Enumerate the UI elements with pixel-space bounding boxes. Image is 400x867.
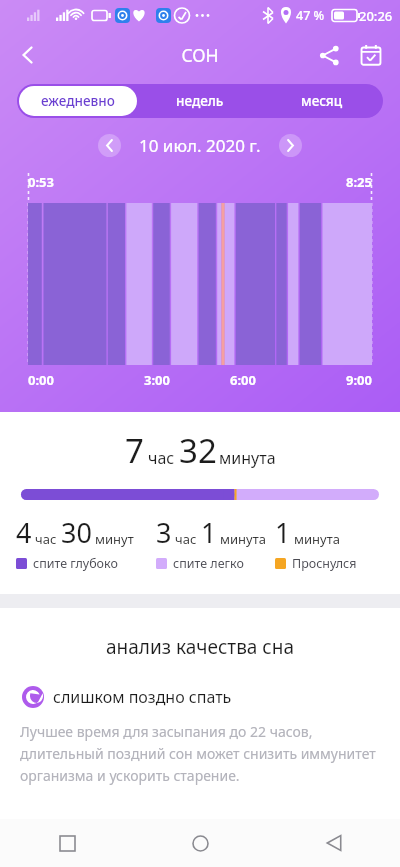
staticText: 0:00 — [28, 371, 54, 389]
staticText: СОН — [181, 43, 219, 67]
staticText: 4 — [16, 514, 32, 551]
staticText: 47 % — [296, 7, 325, 24]
staticText: 8:25 — [346, 173, 372, 191]
staticText: 10 июл. 2020 г. — [139, 134, 261, 157]
staticText: ежедневно — [41, 92, 115, 110]
staticText: слишком поздно спать — [53, 686, 232, 708]
staticText: 1 — [275, 514, 291, 551]
staticText: 3:00 — [144, 371, 170, 389]
staticText: 32 — [179, 428, 217, 473]
staticText: 0:53 — [28, 173, 54, 191]
staticText: месяц — [301, 92, 343, 110]
button[interactable]: Календарь — [350, 34, 392, 76]
staticText: анализ качества сна — [0, 634, 400, 660]
staticText: спите глубоко — [33, 555, 118, 572]
staticText: 30 — [61, 514, 92, 551]
staticText: спите легко — [173, 555, 244, 572]
staticText: минута — [294, 530, 340, 548]
staticText: час — [175, 530, 197, 548]
staticText: Лучшее время для засыпания до 22 часов, … — [20, 722, 378, 785]
staticText: Проснулся — [292, 555, 357, 572]
button[interactable]: Следующий день — [279, 134, 302, 157]
staticText: час — [148, 447, 175, 469]
staticText: недель — [176, 92, 224, 110]
button[interactable]: Назад — [6, 33, 50, 77]
button[interactable]: Предыдущий день — [98, 134, 121, 157]
button[interactable]: недель — [141, 86, 259, 116]
staticText: 1 — [201, 514, 217, 551]
button[interactable]: Обзор — [0, 819, 134, 867]
staticText: 3 — [156, 514, 172, 551]
staticText: час — [35, 530, 57, 548]
button[interactable]: Поделиться — [308, 34, 350, 76]
staticText: минута — [219, 447, 276, 469]
staticText: 6:00 — [230, 371, 256, 389]
button[interactable]: ежедневно — [19, 86, 137, 116]
staticText: 7 — [125, 428, 144, 473]
staticText: 9:00 — [346, 371, 372, 389]
staticText: минут — [95, 530, 134, 548]
staticText: минута — [220, 530, 266, 548]
button[interactable]: Главный экран — [134, 819, 267, 867]
staticText: 20:26 — [359, 7, 393, 25]
button[interactable]: месяц — [263, 86, 381, 116]
button[interactable]: Назад — [267, 819, 400, 867]
